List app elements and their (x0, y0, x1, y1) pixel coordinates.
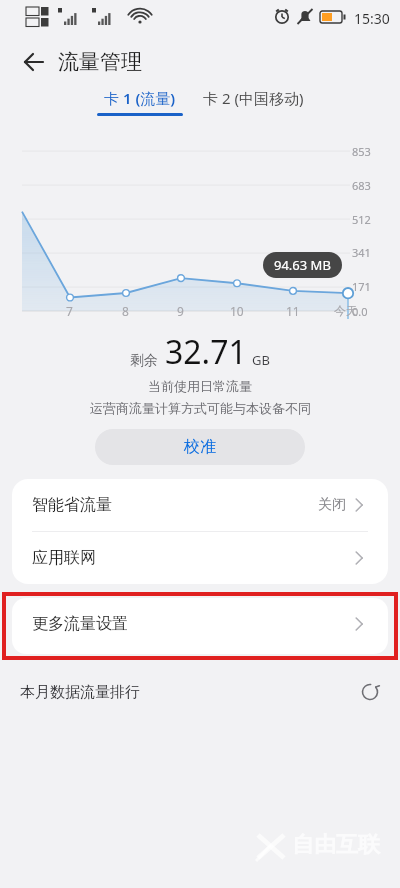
staticText: 94.63 MB (274, 256, 331, 274)
staticText: 171 (352, 279, 371, 294)
other: Refresh (360, 682, 380, 702)
staticText: 今天 (334, 303, 358, 318)
staticText: 853 (352, 144, 371, 159)
staticText: GB (252, 351, 270, 369)
staticText: 当前使用日常流量 (148, 378, 252, 394)
button[interactable]: 更多流量设置 (12, 598, 388, 650)
staticText: 7 (66, 303, 73, 319)
staticText: 卡 1 (流量) (104, 88, 176, 108)
staticText: 卡 2 (中国移动) (203, 88, 304, 108)
staticText: 0.0 (352, 304, 368, 319)
staticText: 应用联网 (32, 548, 96, 568)
button[interactable]: 应用联网 (12, 532, 388, 584)
staticText: 关闭 (318, 496, 346, 514)
staticText: 10 (230, 303, 244, 319)
staticText: 683 (352, 178, 371, 193)
staticText: 15:30 (354, 9, 390, 28)
staticText: 本月数据流量排行 (20, 683, 140, 702)
staticText: 智能省流量 (32, 495, 112, 515)
staticText: 341 (352, 245, 371, 260)
staticText: 更多流量设置 (32, 614, 128, 634)
staticText: 运营商流量计算方式可能与本设备不同 (90, 400, 311, 416)
button[interactable]: 校准 (95, 429, 305, 465)
staticText: 校准 (184, 437, 216, 457)
staticText: 剩余 (130, 352, 158, 370)
staticText: 11 (286, 303, 300, 319)
staticText: 流量管理 (58, 49, 142, 75)
staticText: 32.71 (165, 330, 247, 374)
button[interactable]: 智能省流量 (12, 479, 388, 531)
staticText: 自由互联 (292, 831, 380, 859)
button[interactable]: 本月数据流量排行 (0, 670, 400, 714)
button[interactable]: Back (12, 40, 56, 84)
staticText: 9 (177, 303, 184, 319)
button[interactable]: 卡 2 (中国移动) (199, 88, 308, 108)
staticText: 512 (352, 212, 371, 227)
staticText: 8 (122, 303, 129, 319)
button[interactable]: 卡 1 (流量) (93, 88, 187, 116)
